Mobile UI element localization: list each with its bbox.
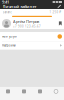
button[interactable]: Profile [48,86,64,100]
staticText: Артём Петров [13,19,39,24]
button[interactable]: Home [0,86,16,100]
button[interactable]: Настройки [0,41,64,49]
staticText: 1 250 ₽ [49,10,61,14]
button[interactable]: Services [16,86,32,100]
staticText: Личный кабинет [2,4,36,9]
staticText: +7 900 123-45-67 [13,25,41,28]
staticText: Мои услуги [2,35,17,38]
button[interactable]: Мои услуги [0,32,64,41]
staticText: Баланс [2,10,11,14]
button[interactable]: Payments [32,86,48,100]
button[interactable]: Edit [56,4,61,9]
staticText: Настройки [2,44,16,47]
button[interactable]: Артём Петров [0,18,64,29]
staticText: 9:41 [2,0,9,5]
